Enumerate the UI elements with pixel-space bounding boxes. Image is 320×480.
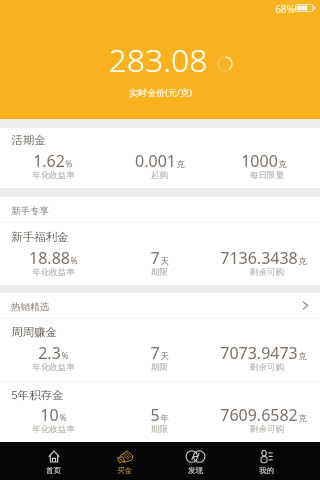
staticText: 10 — [40, 404, 59, 426]
staticText: % — [59, 412, 67, 424]
button[interactable]: 新手福利金 — [0, 225, 320, 285]
staticText: 新手福利金 — [11, 230, 69, 244]
other: 刷新 — [218, 57, 232, 71]
staticText: 年化收益率 — [32, 362, 75, 373]
staticText: 7609.6582 — [220, 404, 298, 426]
button[interactable]: 我的 — [231, 442, 302, 480]
staticText: 克 — [298, 256, 307, 267]
staticText: 活期金 — [11, 133, 46, 147]
button[interactable]: 活期金 — [0, 128, 320, 188]
staticText: 期限 — [151, 267, 168, 278]
staticText: 年 — [160, 413, 169, 424]
staticText: 期限 — [151, 362, 168, 373]
staticText: % — [61, 350, 69, 362]
staticText: 1.62 — [33, 150, 65, 172]
staticText: 克 — [298, 351, 307, 362]
staticText: 7136.3438 — [220, 247, 298, 269]
staticText: % — [70, 255, 78, 267]
staticText: 1000 — [241, 150, 278, 172]
staticText: 年化收益率 — [32, 170, 75, 181]
staticText: 天 — [160, 256, 169, 267]
staticText: 我的 — [259, 466, 274, 475]
staticText: 0.001 — [135, 150, 176, 172]
button[interactable]: 买金 — [89, 442, 160, 480]
staticText: 年化收益率 — [32, 424, 75, 435]
button[interactable]: 首页 — [18, 442, 89, 480]
button[interactable]: 热销精选 — [0, 293, 320, 319]
staticText: 发现 — [188, 466, 203, 475]
staticText: 2.3 — [38, 342, 61, 364]
staticText: 天 — [160, 351, 169, 362]
staticText: 5 — [150, 404, 160, 426]
staticText: 283.08 — [108, 38, 208, 82]
staticText: 剩余可购 — [250, 267, 284, 278]
button[interactable]: 新手专享 — [0, 197, 320, 223]
other: 查看更多 — [301, 301, 310, 310]
staticText: 7073.9473 — [220, 342, 298, 364]
staticText: 克 — [298, 413, 307, 424]
staticText: 年化收益率 — [32, 267, 75, 278]
button[interactable]: 发现 — [160, 442, 231, 480]
staticText: 每日限量 — [250, 170, 284, 181]
staticText: % — [65, 158, 73, 170]
staticText: 7 — [150, 247, 160, 269]
staticText: 剩余可购 — [250, 362, 284, 373]
staticText: 68% — [275, 2, 295, 16]
staticText: 买金 — [117, 466, 132, 475]
button[interactable]: 周周赚金 — [0, 320, 320, 381]
staticText: 18.88 — [29, 247, 70, 269]
staticText: 期限 — [151, 424, 168, 435]
staticText: 起购 — [151, 170, 168, 181]
staticText: 5年积存金 — [11, 387, 64, 403]
staticText: 热销精选 — [11, 301, 49, 313]
staticText: 7 — [150, 342, 160, 364]
staticText: 克 — [278, 159, 287, 170]
staticText: 首页 — [46, 466, 61, 475]
staticText: 周周赚金 — [11, 325, 57, 339]
button[interactable]: 5年积存金 — [0, 382, 320, 442]
staticText: 克 — [176, 159, 185, 170]
staticText: 新手专享 — [11, 205, 49, 217]
staticText: 剩余可购 — [250, 424, 284, 435]
staticText: 实时金价(元/克) — [129, 86, 192, 98]
